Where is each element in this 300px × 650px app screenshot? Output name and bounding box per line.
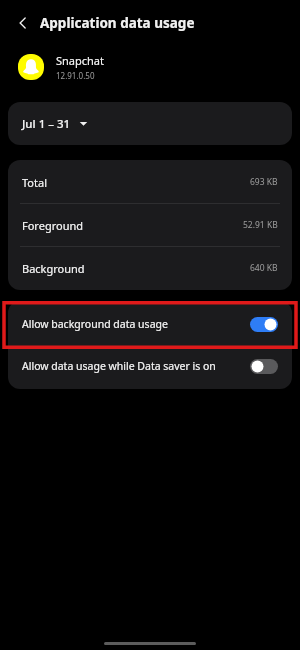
- staticText: Background: [22, 261, 85, 276]
- staticText: 12.91.0.50: [56, 70, 95, 81]
- button[interactable]: Background: [8, 247, 292, 289]
- button[interactable]: Allow data usage while Data saver is on: [8, 346, 292, 386]
- staticText: Foreground: [22, 218, 83, 233]
- staticText: Total: [22, 175, 47, 190]
- staticText: 640 KB: [250, 262, 278, 274]
- button[interactable]: Jul 1 – 31: [8, 102, 292, 145]
- button[interactable]: Snapchat: [0, 46, 300, 88]
- button[interactable]: Foreground: [8, 204, 292, 246]
- staticText: Allow data usage while Data saver is on: [22, 359, 242, 373]
- button[interactable]: Allow background data usage: [8, 304, 292, 344]
- staticText: 52.91 KB: [243, 219, 278, 231]
- staticText: Allow background data usage: [22, 317, 242, 331]
- staticText: 693 KB: [250, 176, 278, 188]
- button[interactable]: Total: [8, 161, 292, 203]
- button[interactable]: Back: [10, 10, 36, 36]
- staticText: Snapchat: [56, 53, 104, 68]
- staticText: Jul 1 – 31: [22, 116, 71, 132]
- staticText: Application data usage: [40, 14, 195, 32]
